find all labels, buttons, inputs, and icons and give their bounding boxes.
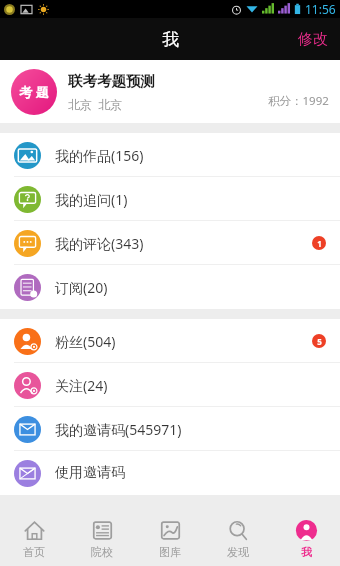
button[interactable]: 订阅(20)	[0, 265, 340, 309]
button[interactable]: 我的评论(343)	[0, 221, 340, 265]
button[interactable]: 修改	[286, 22, 340, 57]
staticText: 发现	[227, 545, 249, 559]
staticText: 使用邀请码	[55, 464, 326, 482]
staticText: 联考考题预测	[68, 72, 155, 90]
staticText: 我的追问(1)	[55, 190, 326, 209]
button[interactable]: 使用邀请码	[0, 451, 340, 495]
staticText: 我的邀请码(545971)	[55, 420, 326, 439]
staticText: 我的作品(156)	[55, 146, 326, 165]
button[interactable]: 我的追问(1)	[0, 177, 340, 221]
button[interactable]: 关注(24)	[0, 363, 340, 407]
staticText: 粉丝(504)	[55, 332, 312, 351]
staticText: 图库	[159, 545, 181, 559]
button[interactable]: 图库	[136, 512, 204, 566]
staticText: 5	[317, 336, 322, 347]
staticText: 11:56	[305, 1, 336, 17]
button[interactable]: 考 题	[0, 60, 340, 123]
button[interactable]: 粉丝(504)	[0, 319, 340, 363]
button[interactable]: 我的作品(156)	[0, 133, 340, 177]
staticText: 考 题	[19, 83, 49, 101]
staticText: 我	[301, 545, 312, 559]
staticText: 我的评论(343)	[55, 234, 312, 253]
button[interactable]: 我	[272, 512, 340, 566]
staticText: 我	[162, 29, 179, 50]
staticText: 积分：1992	[268, 93, 329, 109]
staticText: 北京 北京	[68, 96, 123, 112]
staticText: 首页	[23, 545, 45, 559]
button[interactable]: 首页	[0, 512, 68, 566]
staticText: 1	[317, 238, 322, 249]
button[interactable]: 我的邀请码(545971)	[0, 407, 340, 451]
staticText: 院校	[91, 545, 113, 559]
staticText: 订阅(20)	[55, 278, 326, 297]
button[interactable]: 发现	[204, 512, 272, 566]
button[interactable]: 院校	[68, 512, 136, 566]
staticText: 关注(24)	[55, 376, 326, 395]
staticText: 修改	[298, 30, 328, 49]
